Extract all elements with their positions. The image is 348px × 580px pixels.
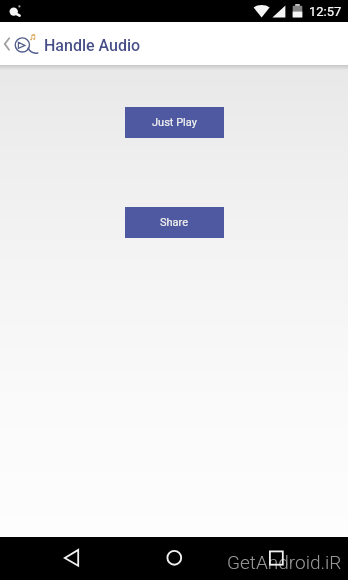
staticText: 12:57 <box>309 4 342 19</box>
button[interactable]: Back <box>0 28 15 58</box>
button[interactable]: Just Play <box>125 107 224 138</box>
button[interactable]: Recent apps <box>256 538 296 578</box>
staticText: Just Play <box>152 116 197 129</box>
button[interactable]: Back <box>52 538 92 578</box>
button[interactable]: Share <box>125 207 224 238</box>
staticText: Handle Audio <box>44 36 141 55</box>
staticText: GetAndroid.iR <box>227 551 342 573</box>
staticText: Share <box>160 216 189 229</box>
button[interactable]: Home <box>154 538 194 578</box>
